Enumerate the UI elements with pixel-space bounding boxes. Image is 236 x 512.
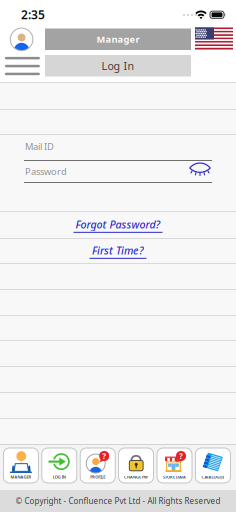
- button[interactable]: Log In: [45, 55, 191, 76]
- staticText: Forgot Password?: [75, 217, 160, 231]
- staticText: CHANGE PW: [124, 474, 148, 480]
- button[interactable]: CHANGE PW: [119, 448, 154, 483]
- staticText: Manager: [96, 33, 139, 45]
- button[interactable]: Account: [10, 28, 33, 51]
- staticText: Password: [25, 165, 67, 178]
- staticText: LOG IN: [53, 474, 66, 480]
- staticText: CATALOGUE: [201, 474, 224, 480]
- button[interactable]: Language: [195, 27, 233, 49]
- staticText: © Copyright - Confluence Pvt Ltd - All R…: [15, 496, 220, 506]
- staticText: ?: [102, 451, 106, 461]
- staticText: PROFILE: [90, 474, 105, 480]
- button[interactable]: Forgot Password?: [0, 212, 236, 238]
- staticText: MANAGER: [10, 474, 31, 480]
- button[interactable]: LOG IN: [42, 448, 77, 483]
- staticText: First Time?: [92, 243, 144, 257]
- staticText: STORE DATA: [163, 474, 186, 480]
- staticText: 2:35: [21, 6, 45, 22]
- staticText: ?: [179, 451, 183, 461]
- button[interactable]: MANAGER: [3, 448, 38, 483]
- button[interactable]: ?: [157, 448, 192, 483]
- button[interactable]: ?: [80, 448, 115, 483]
- button[interactable]: CATALOGUE: [195, 448, 230, 483]
- staticText: Log In: [101, 59, 134, 73]
- button[interactable]: Manager: [45, 28, 191, 50]
- staticText: Mail ID: [25, 140, 54, 153]
- button[interactable]: First Time?: [0, 239, 236, 263]
- button[interactable]: Menu: [5, 57, 40, 75]
- button[interactable]: Show password: [189, 162, 211, 177]
